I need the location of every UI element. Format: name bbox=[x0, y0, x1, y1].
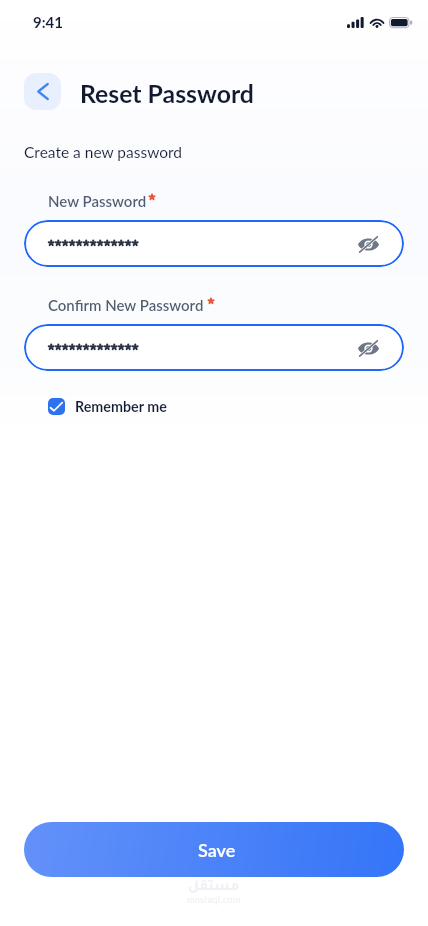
button[interactable]: Show password bbox=[24, 324, 404, 371]
button[interactable]: Remember me bbox=[42, 392, 173, 421]
staticText: 9:41 bbox=[33, 13, 63, 31]
button[interactable]: Show password bbox=[24, 220, 404, 267]
staticText: mostaql.com bbox=[187, 894, 241, 905]
staticText: Confirm New Password bbox=[48, 296, 204, 314]
button[interactable]: Save bbox=[24, 822, 404, 877]
button[interactable]: Back bbox=[24, 73, 61, 110]
button[interactable]: Show password bbox=[352, 228, 384, 260]
button[interactable]: Show password bbox=[352, 332, 384, 364]
staticText: Remember me bbox=[75, 398, 167, 415]
staticText: مستقل bbox=[188, 880, 240, 895]
staticText: New Password bbox=[48, 192, 147, 210]
staticText: Create a new password bbox=[24, 143, 183, 162]
staticText: Reset Password bbox=[80, 79, 254, 109]
staticText: Save bbox=[198, 839, 236, 861]
